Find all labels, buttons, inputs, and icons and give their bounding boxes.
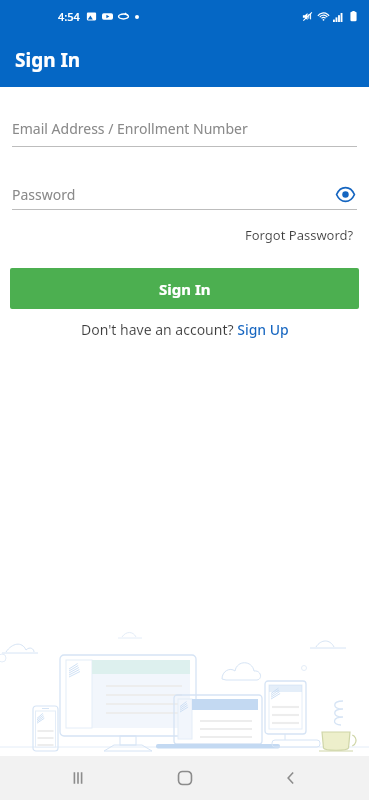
staticText: 4:54 bbox=[58, 9, 80, 24]
button[interactable]: Back bbox=[263, 756, 319, 800]
button[interactable]: Home bbox=[157, 756, 213, 800]
staticText: Password bbox=[12, 185, 333, 204]
button[interactable]: Sign In bbox=[10, 268, 359, 309]
button[interactable]: Email Address / Enrollment Number bbox=[12, 119, 357, 147]
button[interactable]: Password bbox=[12, 182, 357, 206]
button[interactable]: Don't have an account? Sign Up bbox=[73, 318, 297, 341]
staticText: Email Address / Enrollment Number bbox=[12, 119, 248, 138]
staticText: Sign In bbox=[159, 279, 211, 299]
staticText: Forgot Password? bbox=[245, 226, 354, 244]
staticText: Sign In bbox=[15, 47, 81, 73]
staticText: Don't have an account? Sign Up bbox=[81, 320, 289, 339]
button[interactable]: Forgot Password? bbox=[230, 223, 369, 247]
button[interactable]: Recent apps bbox=[50, 756, 106, 800]
button[interactable]: Show password bbox=[333, 182, 357, 206]
